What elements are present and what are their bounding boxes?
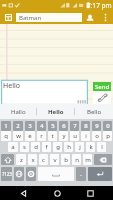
button[interactable]: 7 [70, 121, 79, 131]
button[interactable]: 2 [13, 121, 23, 131]
staticText: w [16, 132, 21, 140]
button[interactable]: l [97, 142, 106, 152]
staticText: 8 [84, 122, 88, 130]
staticText: u [73, 132, 77, 140]
staticText: 6 [62, 122, 66, 130]
button[interactable]: q [1, 131, 11, 141]
staticText: 7:17 pm [87, 1, 112, 10]
staticText: z [20, 156, 23, 164]
button[interactable]: Contacts [3, 11, 13, 24]
button[interactable]: f [42, 142, 51, 152]
button[interactable]: v [50, 154, 59, 165]
button[interactable]: Backspace [94, 154, 112, 165]
button[interactable]: Add recipient [84, 11, 96, 24]
button[interactable]: Settings [26, 167, 36, 181]
staticText: d [34, 143, 38, 151]
button[interactable]: 0 [103, 121, 112, 131]
staticText: Hello [48, 108, 64, 116]
button[interactable]: j [75, 142, 84, 152]
staticText: a [11, 143, 15, 151]
button[interactable]: Send [93, 82, 111, 91]
button[interactable]: Enter [88, 167, 112, 181]
button[interactable]: Shift [1, 154, 14, 165]
button[interactable]: z [16, 154, 26, 165]
staticText: Send [95, 83, 110, 91]
button[interactable]: Home [46, 186, 68, 200]
button[interactable]: ?123 [1, 167, 12, 181]
staticText: q [4, 132, 8, 140]
staticText: i [85, 132, 87, 140]
staticText: x [31, 156, 35, 164]
staticText: 9 [95, 122, 99, 130]
staticText: 3 [28, 122, 32, 130]
button[interactable]: 1 [1, 121, 11, 131]
staticText: 5 [51, 122, 55, 130]
staticText: ?123 [2, 171, 12, 177]
staticText: f [45, 143, 48, 151]
button[interactable]: i [81, 131, 90, 141]
button[interactable]: h [64, 142, 73, 152]
button[interactable]: Hallo [0, 104, 37, 119]
staticText: Bello [87, 108, 102, 116]
staticText: 1 [4, 122, 8, 130]
button[interactable]: Hello [37, 104, 75, 119]
staticText: 7 [73, 122, 77, 130]
button[interactable]: b [61, 154, 70, 165]
button[interactable]: k [86, 142, 95, 152]
button[interactable]: Attach file [93, 92, 111, 104]
button[interactable]: m [83, 154, 92, 165]
button[interactable]: Emoji [14, 167, 24, 181]
staticText: l [101, 143, 103, 151]
staticText: 2 [16, 122, 20, 130]
button[interactable]: g [53, 142, 62, 152]
button[interactable]: o [92, 131, 101, 141]
staticText: Batman [19, 14, 42, 22]
button[interactable]: . [76, 167, 86, 181]
staticText: y [62, 132, 66, 140]
staticText: t [51, 132, 54, 140]
staticText: Hallo [11, 108, 26, 116]
staticText: Hello [3, 81, 20, 91]
button[interactable]: Back [12, 186, 34, 200]
button[interactable]: e [25, 131, 35, 141]
button[interactable]: d [31, 142, 40, 152]
button[interactable]: r [37, 131, 46, 141]
staticText: v [53, 156, 57, 164]
staticText: c [42, 156, 45, 164]
button[interactable]: a [8, 142, 18, 152]
button[interactable]: p [103, 131, 112, 141]
staticText: r [40, 132, 43, 140]
staticText: 0 [106, 122, 110, 130]
button[interactable]: c [39, 154, 48, 165]
staticText: e [28, 132, 32, 140]
staticText: b [64, 156, 68, 164]
button[interactable]: u [70, 131, 79, 141]
staticText: . [80, 170, 82, 178]
staticText: g [56, 143, 60, 151]
button[interactable]: t [48, 131, 57, 141]
button[interactable]: s [20, 142, 29, 152]
button[interactable]: Batman [16, 13, 82, 22]
staticText: 4 [40, 122, 44, 130]
staticText: p [106, 132, 110, 140]
button[interactable]: More options [100, 11, 111, 24]
button[interactable]: 8 [81, 121, 90, 131]
button[interactable]: 6 [59, 121, 68, 131]
button[interactable]: x [28, 154, 37, 165]
button[interactable]: w [13, 131, 23, 141]
button[interactable]: Recents [79, 186, 101, 200]
button[interactable]: 3 [25, 121, 35, 131]
staticText: s [23, 143, 26, 151]
staticText: h [67, 143, 71, 151]
staticText: o [95, 132, 99, 140]
button[interactable]: y [59, 131, 68, 141]
staticText: k [89, 143, 93, 151]
button[interactable]: Bello [75, 104, 113, 119]
button[interactable]: 5 [48, 121, 57, 131]
staticText: j [79, 143, 81, 151]
button[interactable]: 4 [37, 121, 46, 131]
staticText: n [75, 156, 79, 164]
button[interactable]: n [72, 154, 81, 165]
button[interactable]: 9 [92, 121, 101, 131]
button[interactable]: Space [38, 167, 74, 181]
